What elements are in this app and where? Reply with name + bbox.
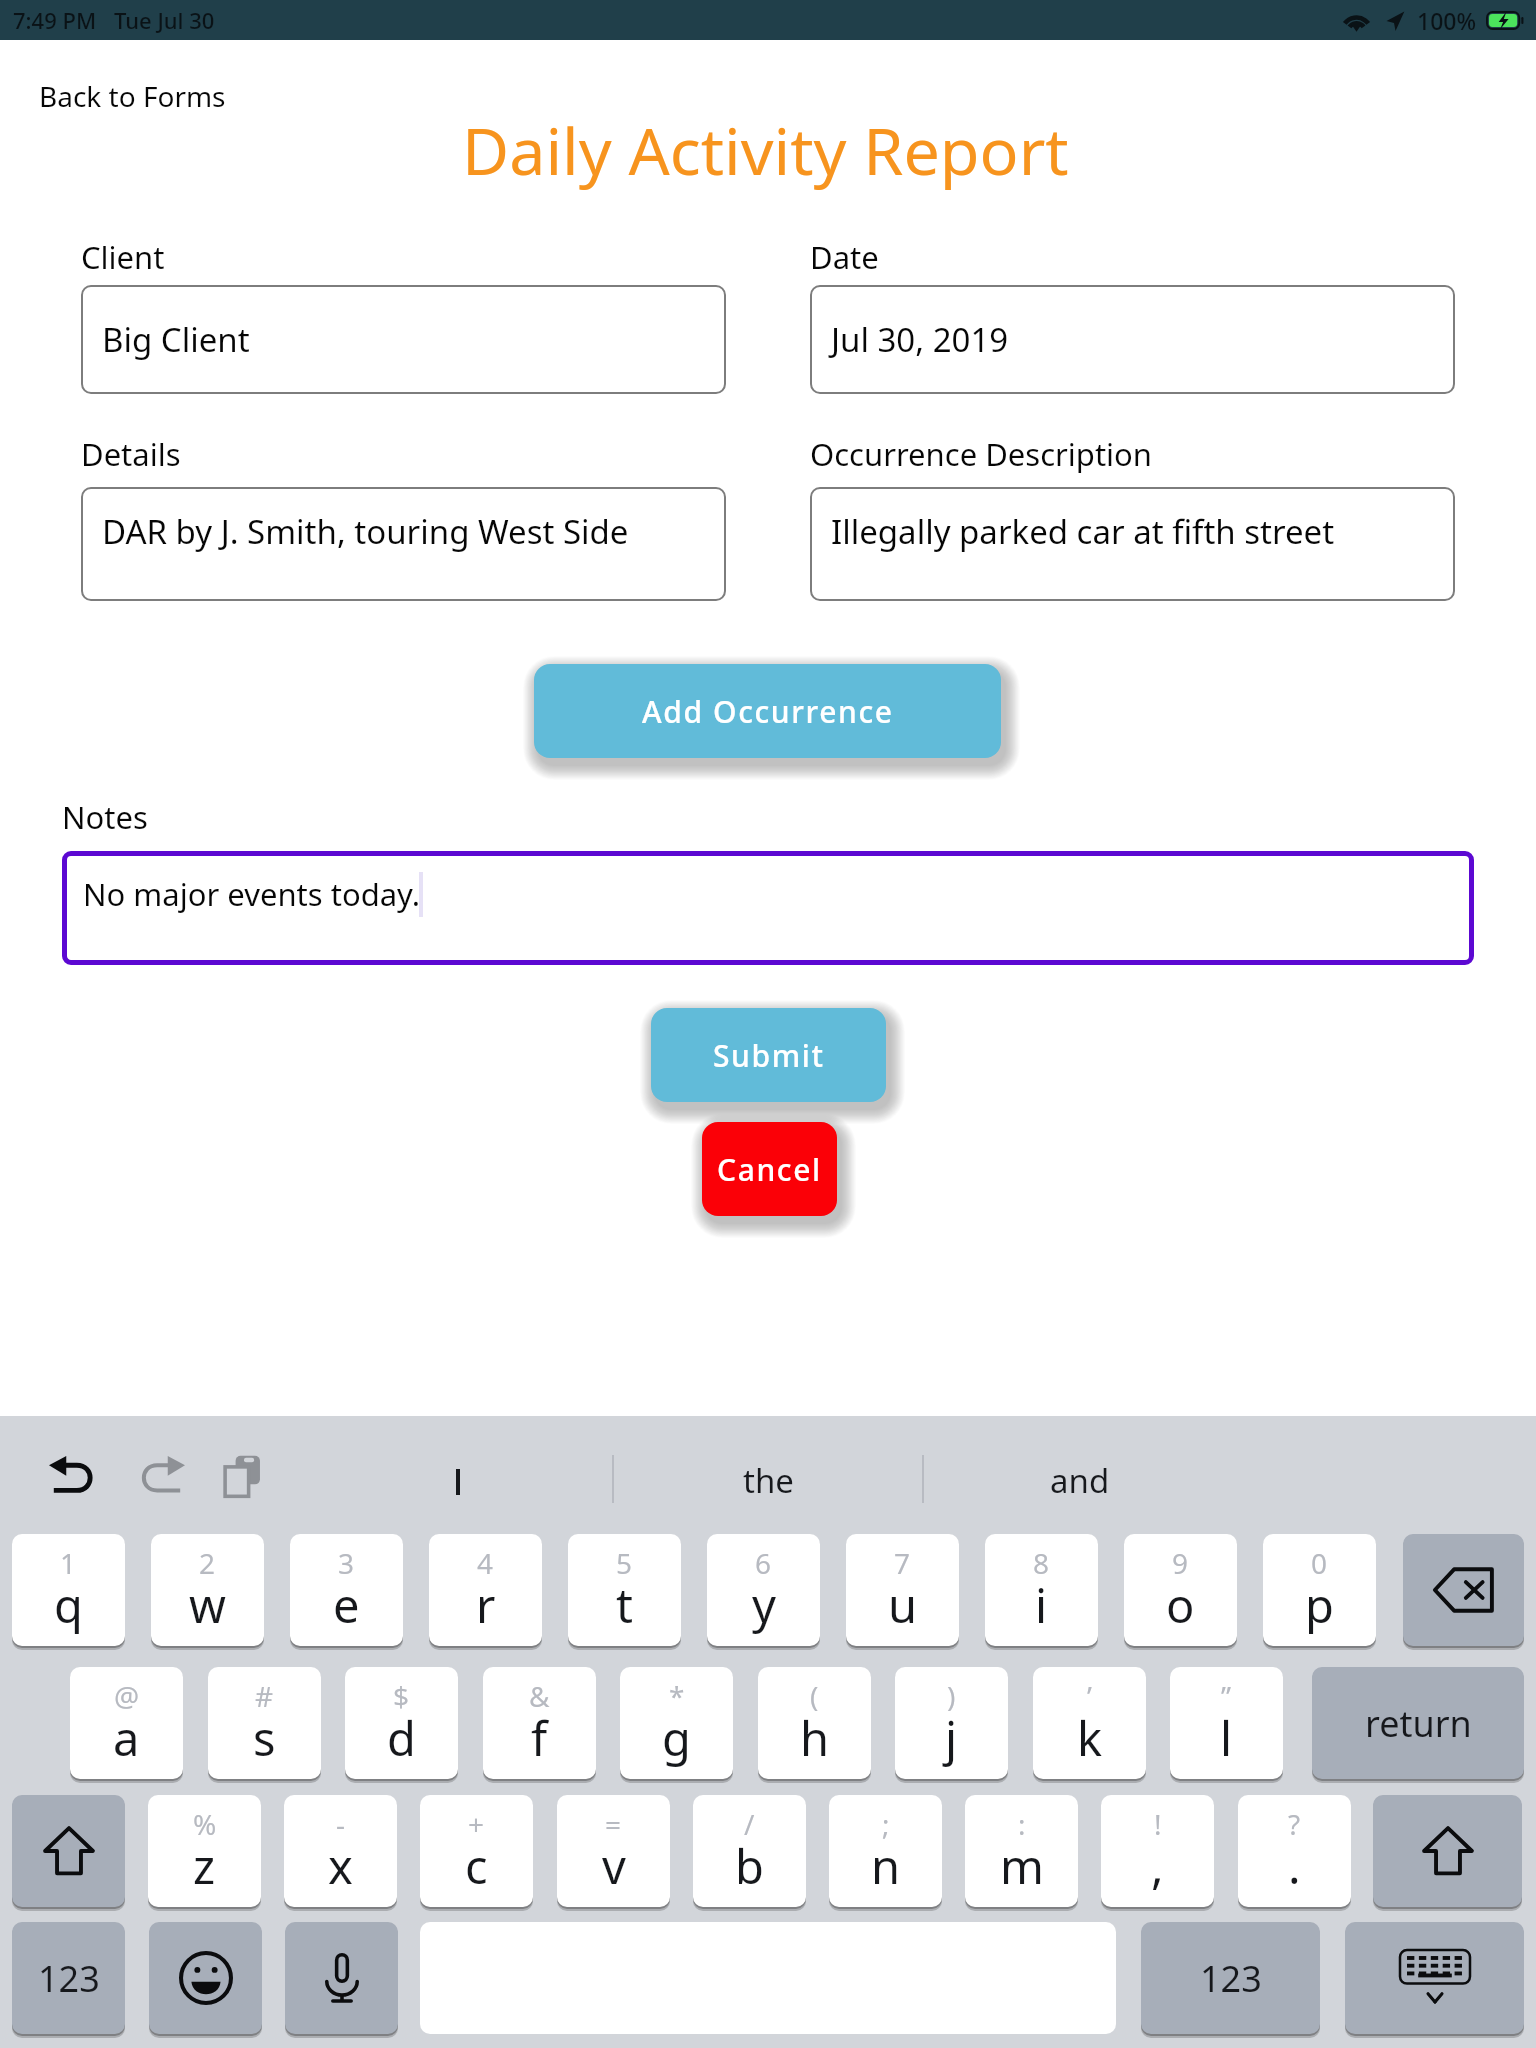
- staticText: +: [468, 1805, 485, 1843]
- staticText: u: [888, 1573, 918, 1637]
- button[interactable]: Hide keyboard: [1345, 1922, 1524, 2034]
- staticText: 7: [894, 1544, 911, 1582]
- button[interactable]: *: [620, 1667, 733, 1779]
- staticText: m: [1000, 1834, 1044, 1898]
- staticText: k: [1077, 1706, 1103, 1770]
- button[interactable]: ”: [1170, 1667, 1283, 1779]
- staticText: and: [1050, 1458, 1110, 1503]
- staticText: r: [476, 1573, 496, 1637]
- button[interactable]: 123: [12, 1922, 125, 2034]
- staticText: y: [752, 1573, 776, 1637]
- button[interactable]: $: [345, 1667, 458, 1779]
- button[interactable]: @: [70, 1667, 183, 1779]
- button[interactable]: Dictation: [285, 1922, 398, 2034]
- button[interactable]: and: [950, 1422, 1210, 1538]
- staticText: n: [871, 1834, 901, 1898]
- staticText: g: [662, 1706, 691, 1770]
- staticText: *: [669, 1677, 685, 1715]
- button[interactable]: (: [758, 1667, 871, 1779]
- button[interactable]: Paste: [212, 1444, 276, 1510]
- button[interactable]: Add Occurrence: [534, 664, 1001, 758]
- staticText: Illegally parked car at fifth street: [831, 509, 1335, 554]
- staticText: Big Client: [102, 317, 250, 362]
- button[interactable]: 123: [1141, 1922, 1320, 2034]
- button[interactable]: DAR by J. Smith, touring West Side: [81, 487, 726, 601]
- button[interactable]: 7: [846, 1534, 959, 1646]
- staticText: l: [1220, 1706, 1233, 1770]
- staticText: @: [114, 1677, 140, 1715]
- button[interactable]: 1: [12, 1534, 125, 1646]
- button[interactable]: +: [420, 1795, 533, 1907]
- staticText: 6: [755, 1544, 772, 1582]
- staticText: the: [743, 1458, 794, 1503]
- button[interactable]: Illegally parked car at fifth street: [810, 487, 1455, 601]
- button[interactable]: No major events today.: [62, 851, 1474, 965]
- staticText: h: [800, 1706, 830, 1770]
- button[interactable]: Back to Forms: [23, 65, 242, 127]
- button[interactable]: Shift: [1373, 1795, 1522, 1907]
- staticText: 2: [199, 1544, 216, 1582]
- staticText: j: [945, 1706, 958, 1770]
- button[interactable]: 5: [568, 1534, 681, 1646]
- button[interactable]: !: [1101, 1795, 1214, 1907]
- button[interactable]: 2: [151, 1534, 264, 1646]
- staticText: 123: [1200, 1954, 1262, 2003]
- staticText: p: [1305, 1573, 1334, 1637]
- button[interactable]: 6: [707, 1534, 820, 1646]
- staticText: Jul 30, 2019: [831, 317, 1009, 362]
- button[interactable]: /: [693, 1795, 806, 1907]
- button[interactable]: -: [284, 1795, 397, 1907]
- button[interactable]: Submit: [651, 1008, 886, 1102]
- button[interactable]: the: [638, 1422, 898, 1538]
- button[interactable]: return: [1312, 1667, 1524, 1779]
- staticText: 3: [338, 1544, 355, 1582]
- staticText: Tue Jul 30: [114, 5, 215, 35]
- staticText: ): [947, 1677, 956, 1715]
- button[interactable]: ): [895, 1667, 1008, 1779]
- button[interactable]: Jul 30, 2019: [810, 285, 1455, 394]
- staticText: Occurrence Description: [810, 433, 1152, 475]
- button[interactable]: 4: [429, 1534, 542, 1646]
- button[interactable]: Emoji: [149, 1922, 262, 2034]
- staticText: %: [193, 1805, 217, 1843]
- staticText: ?: [1288, 1805, 1301, 1843]
- staticText: z: [193, 1834, 216, 1898]
- staticText: 7:49 PM: [13, 5, 97, 35]
- staticText: 123: [38, 1954, 100, 2003]
- button[interactable]: ;: [829, 1795, 942, 1907]
- staticText: ;: [882, 1805, 890, 1843]
- button[interactable]: Cancel: [702, 1122, 837, 1216]
- staticText: &: [529, 1677, 550, 1715]
- staticText: 100%: [1417, 5, 1477, 36]
- button[interactable]: Shift: [12, 1795, 125, 1907]
- staticText: 1: [60, 1544, 77, 1582]
- staticText: ,: [1151, 1834, 1164, 1898]
- button[interactable]: &: [483, 1667, 596, 1779]
- staticText: DAR by J. Smith, touring West Side: [102, 509, 629, 554]
- button[interactable]: Backspace: [1403, 1534, 1524, 1646]
- button[interactable]: 9: [1124, 1534, 1237, 1646]
- button[interactable]: ’: [1033, 1667, 1146, 1779]
- button[interactable]: :: [965, 1795, 1078, 1907]
- staticText: Details: [81, 433, 181, 475]
- button[interactable]: #: [208, 1667, 321, 1779]
- staticText: /: [744, 1805, 755, 1843]
- button[interactable]: 3: [290, 1534, 403, 1646]
- button[interactable]: 0: [1263, 1534, 1376, 1646]
- staticText: c: [465, 1834, 488, 1898]
- button[interactable]: =: [557, 1795, 670, 1907]
- staticText: Date: [810, 236, 879, 278]
- staticText: a: [113, 1706, 140, 1770]
- button[interactable]: Undo: [39, 1446, 107, 1508]
- staticText: o: [1166, 1573, 1195, 1637]
- button[interactable]: Redo: [127, 1446, 195, 1508]
- button[interactable]: 8: [985, 1534, 1098, 1646]
- button[interactable]: ?: [1238, 1795, 1351, 1907]
- staticText: v: [602, 1834, 626, 1898]
- button[interactable]: %: [148, 1795, 261, 1907]
- staticText: !: [1154, 1805, 1162, 1843]
- button[interactable]: Big Client: [81, 285, 726, 394]
- button[interactable]: I: [328, 1422, 588, 1538]
- staticText: s: [253, 1706, 276, 1770]
